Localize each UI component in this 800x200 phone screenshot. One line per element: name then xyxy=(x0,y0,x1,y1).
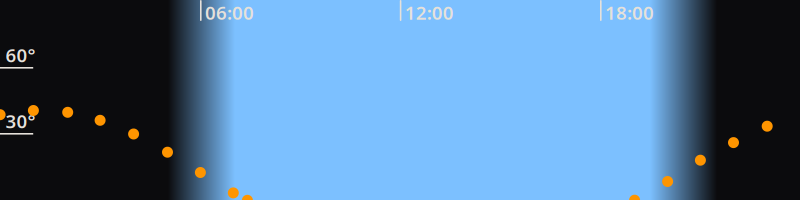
staticText: 60° xyxy=(6,43,36,67)
staticText: 06:00 xyxy=(205,0,254,25)
button[interactable]: Moon altitude chart xyxy=(0,0,800,200)
staticText: 18:00 xyxy=(605,0,654,25)
staticText: 30° xyxy=(6,109,36,133)
staticText: 12:00 xyxy=(405,0,454,25)
